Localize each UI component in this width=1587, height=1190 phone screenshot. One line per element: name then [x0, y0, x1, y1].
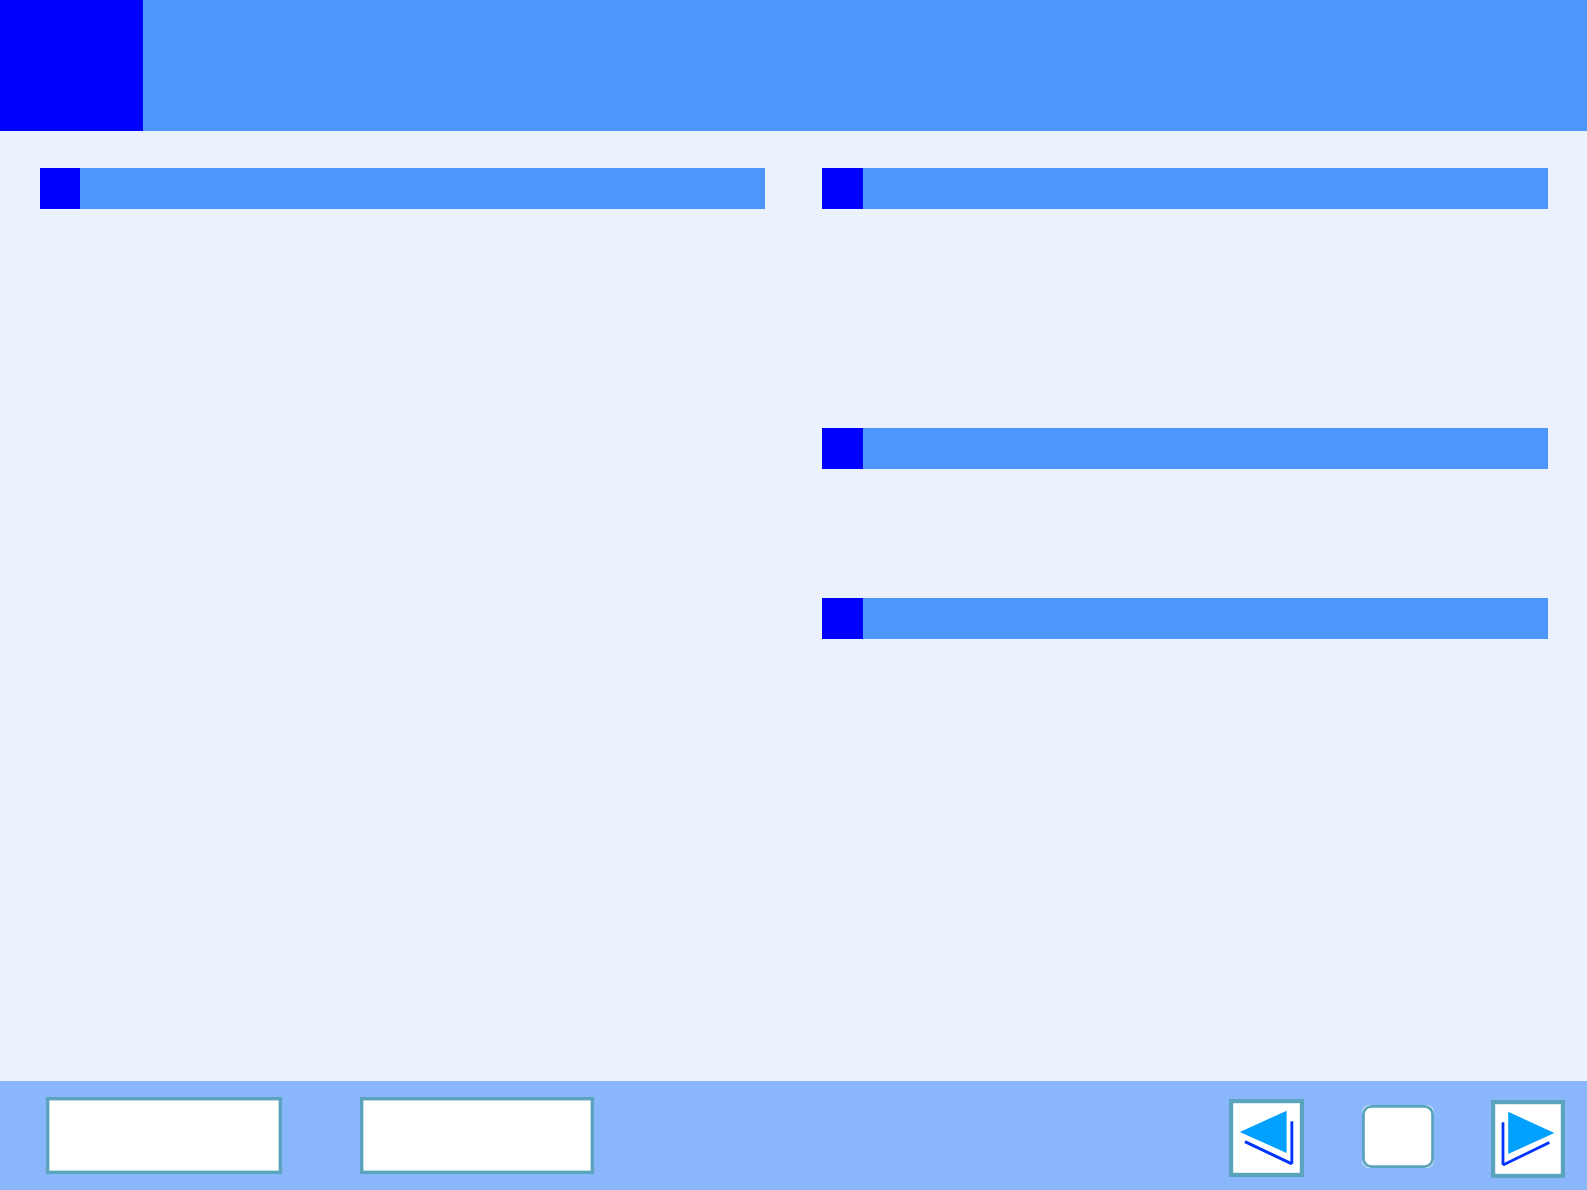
button[interactable]: List item 2 [822, 168, 1548, 209]
button[interactable]: Stop [1362, 1105, 1434, 1168]
button[interactable]: Next [1491, 1100, 1565, 1178]
button[interactable]: List item 3 [822, 428, 1548, 469]
button[interactable]: List item 1 [40, 168, 765, 209]
button[interactable]: Previous [1229, 1099, 1304, 1177]
button[interactable]: Action two [360, 1097, 594, 1174]
button[interactable]: List item 4 [822, 598, 1548, 639]
button[interactable]: Action one [46, 1097, 282, 1174]
